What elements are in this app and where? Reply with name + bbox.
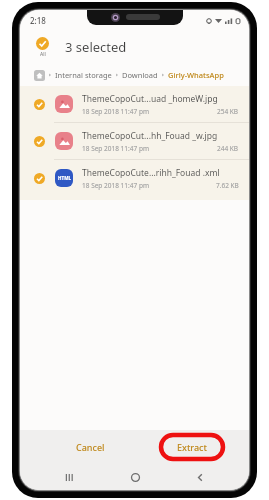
staticText: 18 Sep 2018 11:47 pm [82, 107, 149, 116]
staticText: 7.62 KB [216, 181, 239, 190]
staticText: 18 Sep 2018 11:47 pm [82, 144, 149, 153]
staticText: ThemeCopoCut...uad _homeW.jpg [82, 93, 218, 105]
button[interactable]: Download [122, 70, 158, 80]
button[interactable]: Home [118, 464, 152, 490]
staticText: ThemeCopoCut...hh_Fouad _w.jpg [82, 130, 218, 142]
staticText: 2:18 [30, 15, 46, 26]
staticText: HTML [58, 175, 71, 181]
staticText: Extract [177, 441, 207, 453]
staticText: All [40, 51, 46, 58]
button[interactable]: HTML [20, 160, 249, 196]
staticText: ThemeCopoCute...rihh_Fouad .xml [82, 167, 220, 179]
staticText: 3 selected [65, 38, 127, 56]
staticText: 244 KB [217, 144, 239, 153]
button[interactable]: ThemeCopoCut...hh_Fouad _w.jpg [20, 123, 249, 159]
button[interactable]: Select all [34, 36, 51, 59]
button[interactable]: Recent apps [52, 464, 86, 490]
button[interactable]: Home [34, 70, 45, 81]
staticText: 254 KB [217, 107, 239, 116]
button[interactable]: Internal storage [55, 70, 112, 80]
button[interactable]: Cancel [66, 437, 115, 457]
button[interactable]: Back [183, 464, 217, 490]
button[interactable]: ThemeCopoCut...uad _homeW.jpg [20, 86, 249, 122]
staticText: 18 Sep 2018 11:47 pm [82, 181, 149, 190]
button[interactable]: Girly-WhatsApp [168, 70, 224, 80]
button[interactable]: Extract [167, 437, 217, 457]
staticText: Cancel [76, 441, 105, 453]
